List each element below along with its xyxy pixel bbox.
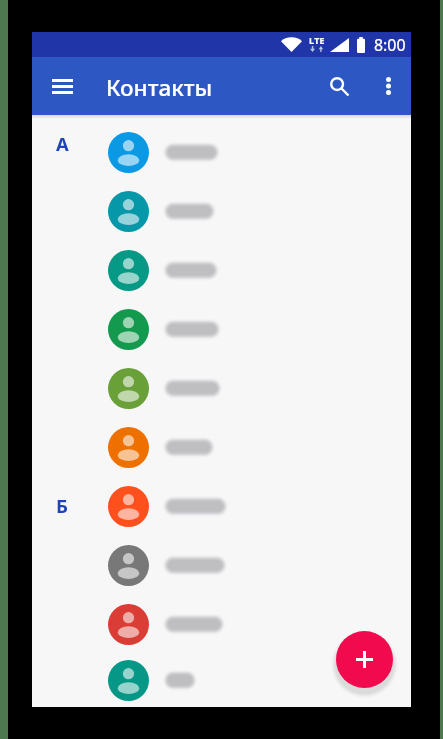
button[interactable] xyxy=(32,536,411,595)
staticText: 8:00 xyxy=(374,34,406,56)
button[interactable] xyxy=(32,654,411,707)
button[interactable] xyxy=(32,418,411,477)
button[interactable] xyxy=(32,182,411,241)
staticText: А xyxy=(56,131,69,156)
staticText: Контакты xyxy=(106,72,213,103)
button[interactable]: А xyxy=(32,123,411,182)
button[interactable] xyxy=(32,359,411,418)
staticText: LTE xyxy=(309,35,325,47)
button[interactable]: Add contact xyxy=(336,631,393,688)
button[interactable]: Б xyxy=(32,477,411,536)
button[interactable]: More options xyxy=(366,64,410,108)
button[interactable]: Search xyxy=(315,62,363,110)
button[interactable]: Open navigation menu xyxy=(39,63,85,109)
button[interactable] xyxy=(32,595,411,654)
button[interactable] xyxy=(32,241,411,300)
staticText: Б xyxy=(56,493,68,518)
button[interactable] xyxy=(32,300,411,359)
